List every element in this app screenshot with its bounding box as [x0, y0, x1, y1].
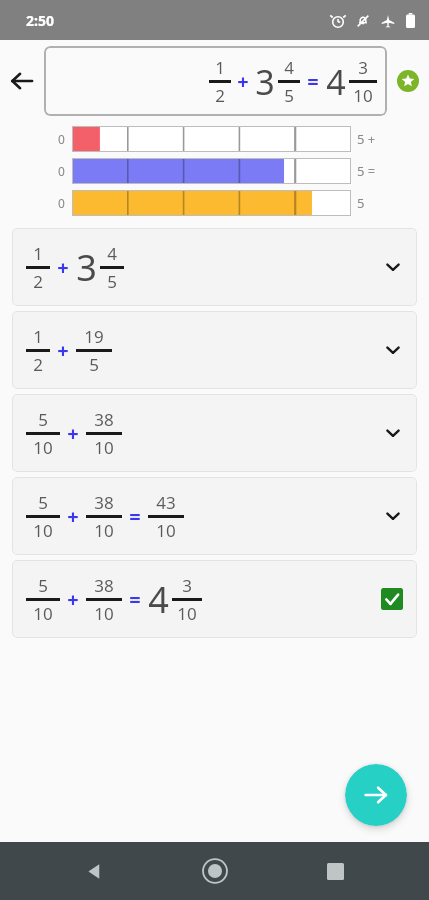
button[interactable]: 5 — [12, 394, 417, 472]
staticText: = — [129, 586, 141, 613]
button[interactable]: Back — [68, 845, 120, 897]
staticText: 10 — [156, 519, 176, 542]
staticText: 0 — [58, 195, 65, 211]
staticText: 3 — [255, 59, 275, 105]
staticText: + — [67, 503, 79, 530]
staticText: 5 — [38, 574, 48, 597]
staticText: 19 — [84, 325, 104, 348]
staticText: 4 — [107, 242, 117, 265]
staticText: 2 — [33, 270, 43, 293]
staticText: + — [57, 254, 69, 281]
button[interactable]: Recents — [309, 845, 361, 897]
button[interactable]: 5 — [12, 560, 417, 638]
staticText: + — [67, 420, 79, 447]
staticText: 3 — [358, 56, 368, 79]
staticText: 10 — [94, 436, 114, 459]
button[interactable]: 5 — [12, 477, 417, 555]
staticText: 3 — [182, 574, 192, 597]
staticText: 4 — [148, 575, 169, 624]
staticText: + — [237, 68, 249, 95]
staticText: 10 — [94, 519, 114, 542]
staticText: = — [307, 68, 319, 95]
staticText: 10 — [353, 84, 373, 107]
button[interactable]: 1 — [12, 228, 417, 306]
staticText: 43 — [156, 491, 176, 514]
staticText: 5 — [284, 84, 294, 107]
staticText: 2 — [33, 353, 43, 376]
staticText: 10 — [33, 519, 53, 542]
staticText: 0 — [58, 131, 65, 147]
staticText: 5 — [38, 408, 48, 431]
staticText: 10 — [94, 602, 114, 625]
staticText: 10 — [177, 602, 197, 625]
staticText: + — [57, 337, 69, 364]
button[interactable]: Back — [0, 40, 44, 122]
staticText: 0 — [58, 163, 65, 179]
staticText: 10 — [33, 436, 53, 459]
staticText: 5 — [107, 270, 117, 293]
staticText: + — [67, 586, 79, 613]
button[interactable]: 1 — [12, 311, 417, 389]
staticText: 5 — [89, 353, 99, 376]
staticText: 1 — [215, 56, 225, 79]
button[interactable]: 1 — [44, 46, 387, 116]
staticText: 5 — [38, 491, 48, 514]
staticText: 4 — [326, 59, 346, 105]
staticText: 38 — [94, 408, 114, 431]
staticText: = — [129, 503, 141, 530]
staticText: 38 — [94, 491, 114, 514]
staticText: 1 — [33, 242, 43, 265]
staticText: 2:50 — [26, 11, 54, 30]
staticText: 38 — [94, 574, 114, 597]
staticText: 3 — [76, 243, 97, 292]
staticText: 4 — [284, 56, 294, 79]
staticText: 2 — [215, 84, 225, 107]
staticText: 5 = — [357, 162, 376, 180]
button[interactable]: Home — [189, 845, 241, 897]
staticText: 5 + — [357, 130, 376, 148]
button[interactable]: Favorite — [387, 40, 429, 122]
staticText: 5 — [357, 194, 365, 212]
staticText: 10 — [33, 602, 53, 625]
button[interactable]: Next — [345, 764, 407, 826]
staticText: 1 — [33, 325, 43, 348]
